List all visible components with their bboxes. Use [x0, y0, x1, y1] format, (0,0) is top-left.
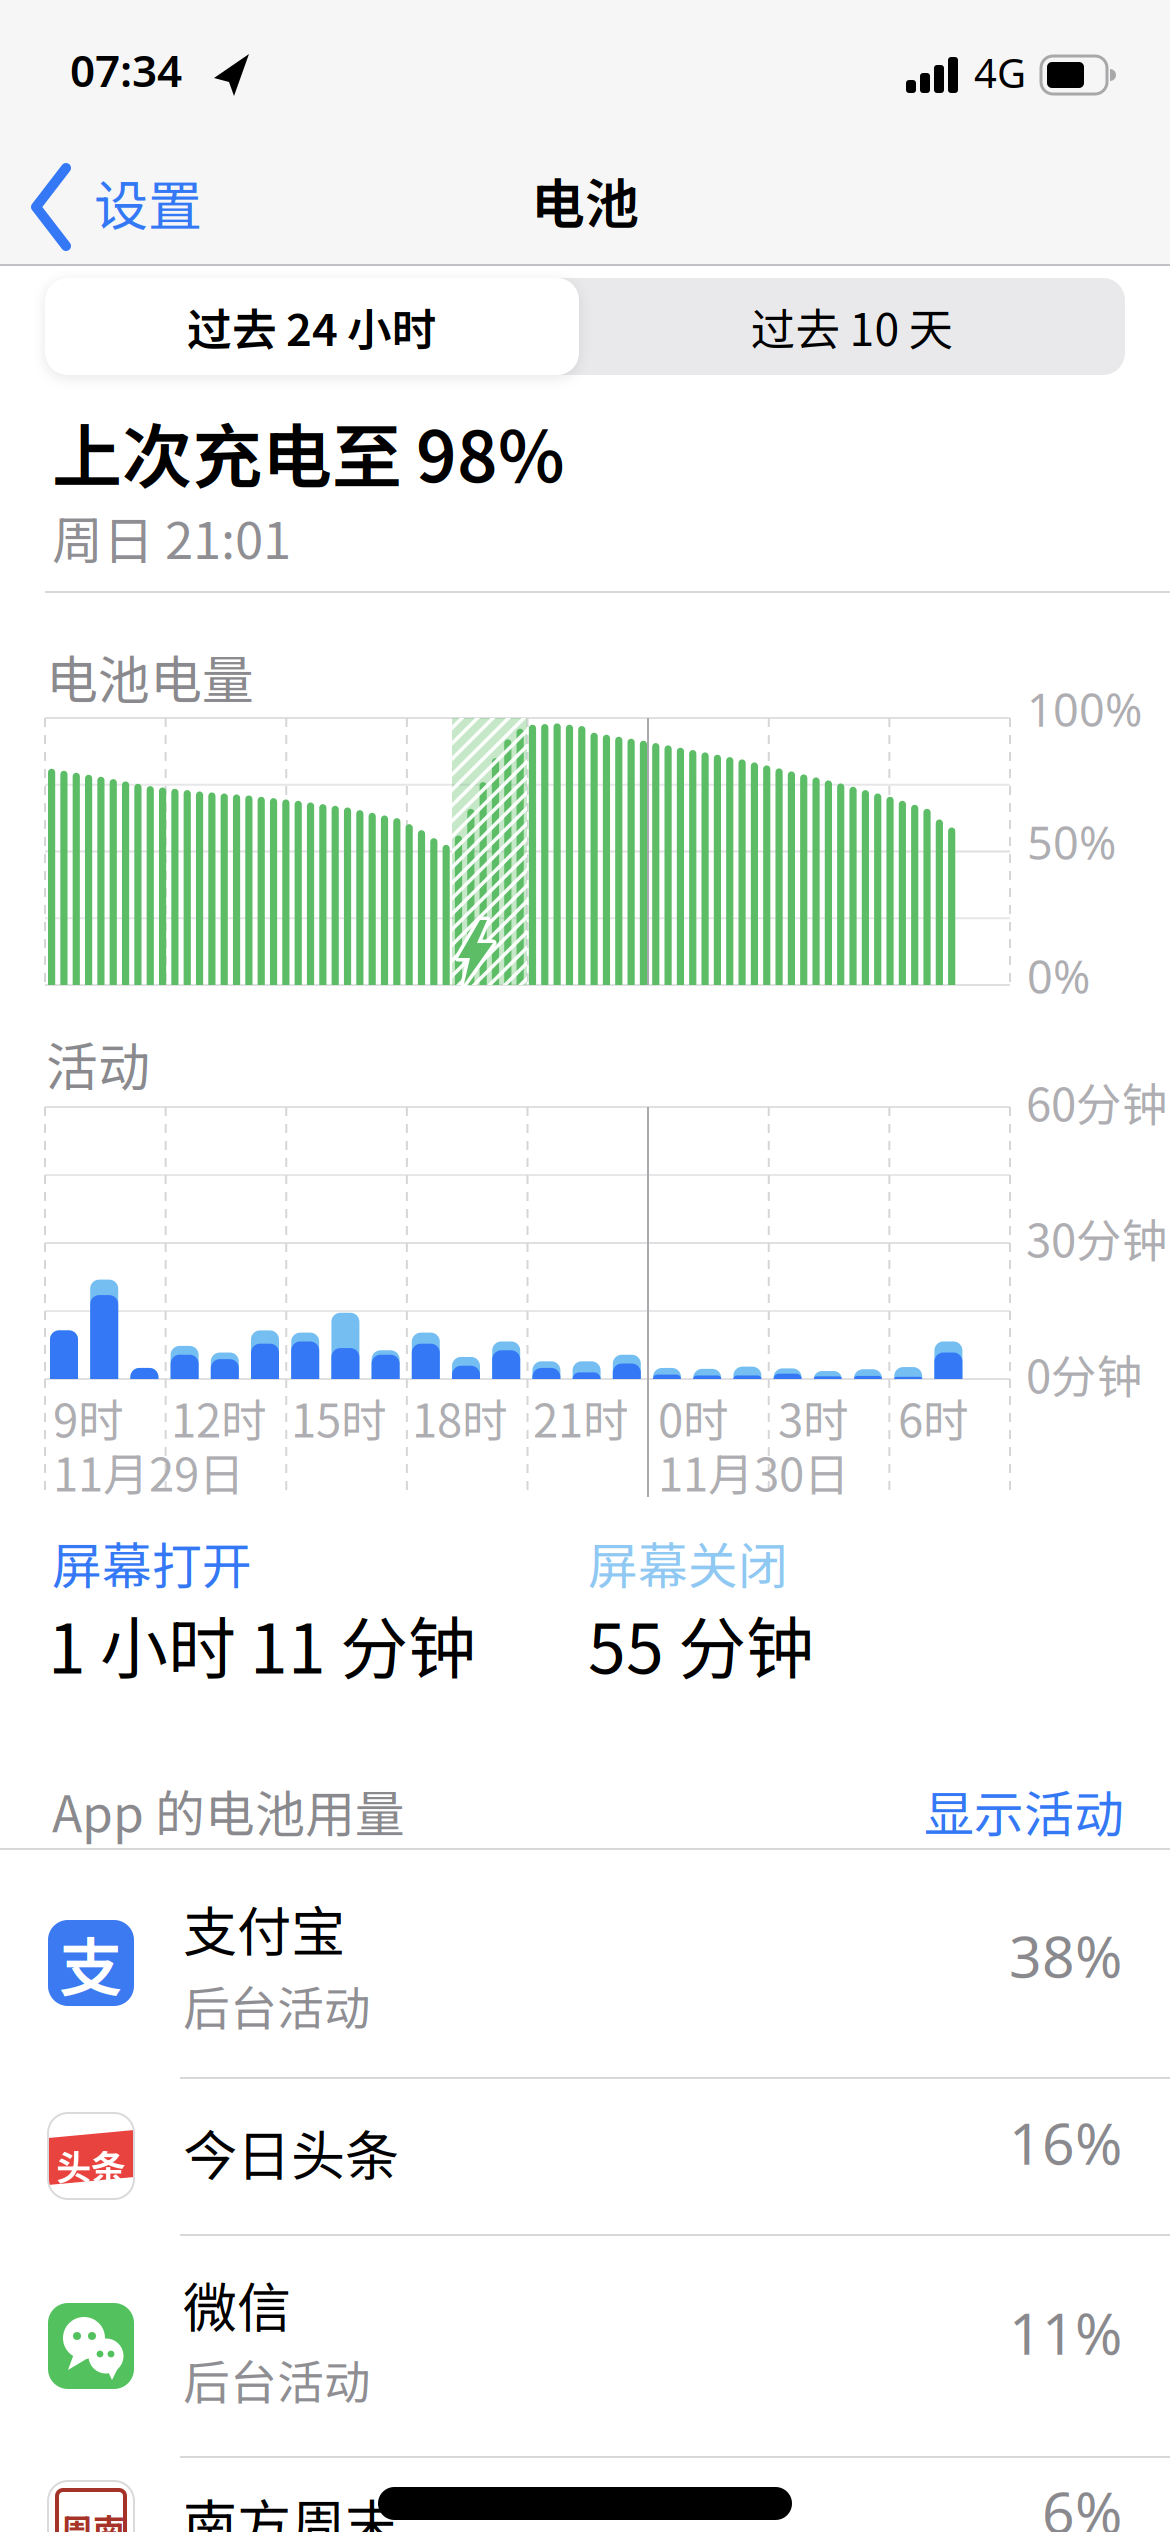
button[interactable]: 支 — [0, 1849, 1170, 2078]
button[interactable]: 周 — [0, 2458, 1170, 2532]
staticText: 11月29日 — [53, 1439, 245, 1505]
staticText: 0分钟 — [1026, 1341, 1143, 1407]
button[interactable]: 头条 — [0, 2079, 1170, 2235]
staticText: 支付宝 — [183, 1889, 345, 1967]
staticText: 100% — [1027, 680, 1142, 738]
staticText: 微信 — [183, 2265, 291, 2343]
staticText: 屏幕关闭 — [588, 1526, 788, 1598]
staticText: 电池电量 — [46, 639, 254, 714]
staticText: 12时 — [171, 1385, 267, 1451]
staticText: 0时 — [658, 1385, 729, 1451]
staticText: 过去 10 天 — [750, 294, 953, 359]
staticText: 显示活动 — [924, 1774, 1124, 1846]
staticText: 07:34 — [70, 41, 182, 98]
staticText: 头条 — [56, 2140, 126, 2191]
staticText: 15时 — [291, 1385, 387, 1451]
button[interactable]: 过去 10 天 — [579, 278, 1125, 375]
staticText: 后台活动 — [183, 1971, 371, 2039]
button[interactable]: 过去 24 小时 — [45, 278, 579, 375]
button[interactable]: 返回设置 — [0, 150, 240, 265]
button[interactable]: 显示活动 — [0, 0, 560, 72]
staticText: 支 — [59, 1917, 123, 2009]
staticText: 屏幕打开 — [52, 1526, 252, 1598]
staticText: 6时 — [898, 1385, 969, 1451]
button[interactable]: 微信 — [0, 2236, 1170, 2457]
staticText: 9时 — [53, 1385, 124, 1451]
staticText: 周日 21:01 — [52, 500, 291, 574]
staticText: 0% — [1027, 947, 1090, 1005]
staticText: 55 分钟 — [588, 1595, 814, 1693]
staticText: 16% — [1009, 2106, 1122, 2180]
staticText: 30分钟 — [1026, 1205, 1168, 1271]
staticText: 21时 — [533, 1385, 629, 1451]
staticText: 50% — [1027, 813, 1116, 871]
staticText: 18时 — [412, 1385, 508, 1451]
staticText: 3时 — [778, 1385, 849, 1451]
staticText: 今日头条 — [183, 2113, 399, 2191]
staticText: 南 — [93, 2505, 125, 2532]
staticText: 活动 — [46, 1026, 150, 1101]
staticText: 后台活动 — [183, 2345, 371, 2413]
staticText: 设置 — [94, 163, 202, 241]
staticText: 38% — [1009, 1919, 1122, 1993]
staticText: 6% — [1042, 2475, 1122, 2532]
staticText: 南方周末 — [183, 2482, 399, 2532]
staticText: 周 — [61, 2505, 93, 2532]
staticText: 11月30日 — [658, 1439, 850, 1505]
staticText: 1 小时 11 分钟 — [48, 1595, 476, 1693]
staticText: 60分钟 — [1026, 1069, 1168, 1135]
staticText: 上次充电至 98% — [52, 401, 565, 502]
staticText: 电池 — [531, 161, 639, 239]
staticText: 过去 24 小时 — [187, 294, 437, 359]
staticText: 11% — [1009, 2296, 1122, 2370]
staticText: App 的电池用量 — [52, 1774, 405, 1846]
staticText: 4G — [974, 47, 1026, 98]
